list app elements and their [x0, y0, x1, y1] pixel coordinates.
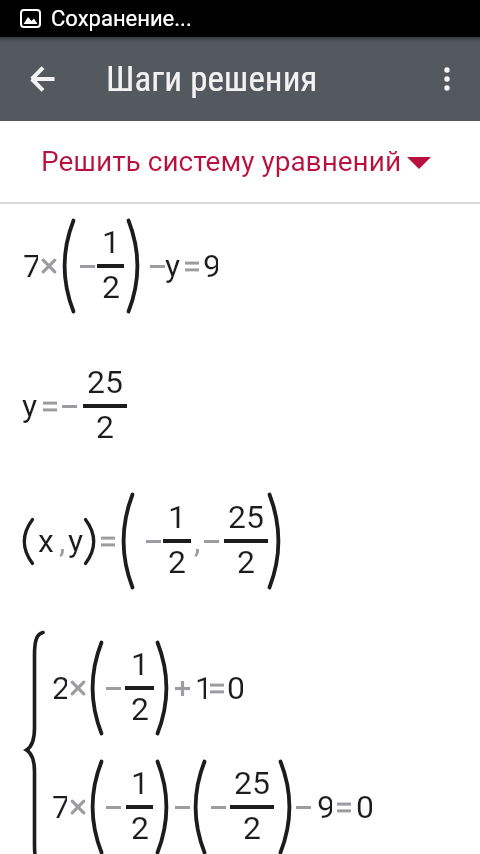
- staticText: 1: [168, 498, 186, 536]
- staticText: Решить систему уравнений: [41, 145, 402, 178]
- staticText: 1: [131, 645, 149, 683]
- staticText: 2: [52, 669, 67, 707]
- staticText: 9: [317, 788, 332, 826]
- staticText: x: [38, 522, 53, 560]
- staticText: y: [68, 522, 84, 560]
- staticText: 1: [195, 669, 206, 707]
- staticText: ,: [59, 522, 66, 560]
- staticText: 25: [228, 498, 264, 536]
- staticText: 25: [234, 764, 270, 802]
- button[interactable]: Решить систему уравнений: [0, 121, 480, 202]
- staticText: 25: [87, 363, 123, 401]
- staticText: 0: [356, 788, 372, 826]
- button[interactable]: 7: [0, 742, 480, 854]
- staticText: Сохранение...: [51, 6, 192, 32]
- staticText: y: [22, 387, 38, 425]
- staticText: 2: [131, 809, 149, 847]
- staticText: y: [165, 247, 181, 285]
- button[interactable]: [24, 60, 62, 98]
- staticText: 0: [227, 669, 243, 707]
- staticText: 7: [23, 247, 38, 285]
- staticText: 7: [52, 788, 67, 826]
- staticText: 9: [203, 247, 218, 285]
- staticText: 2: [102, 268, 120, 306]
- staticText: 1: [102, 223, 120, 261]
- button[interactable]: 2: [0, 623, 480, 753]
- staticText: 2: [96, 408, 114, 446]
- staticText: 2: [243, 809, 261, 847]
- staticText: 2: [237, 543, 255, 581]
- staticText: 1: [131, 764, 149, 802]
- staticText: 2: [131, 690, 149, 728]
- staticText: Шаги решения: [106, 59, 318, 100]
- staticText: ,: [194, 522, 201, 560]
- button[interactable]: y: [0, 341, 480, 471]
- button[interactable]: 7: [0, 201, 480, 331]
- button[interactable]: [428, 60, 466, 98]
- button[interactable]: x: [0, 476, 480, 606]
- staticText: 2: [168, 543, 186, 581]
